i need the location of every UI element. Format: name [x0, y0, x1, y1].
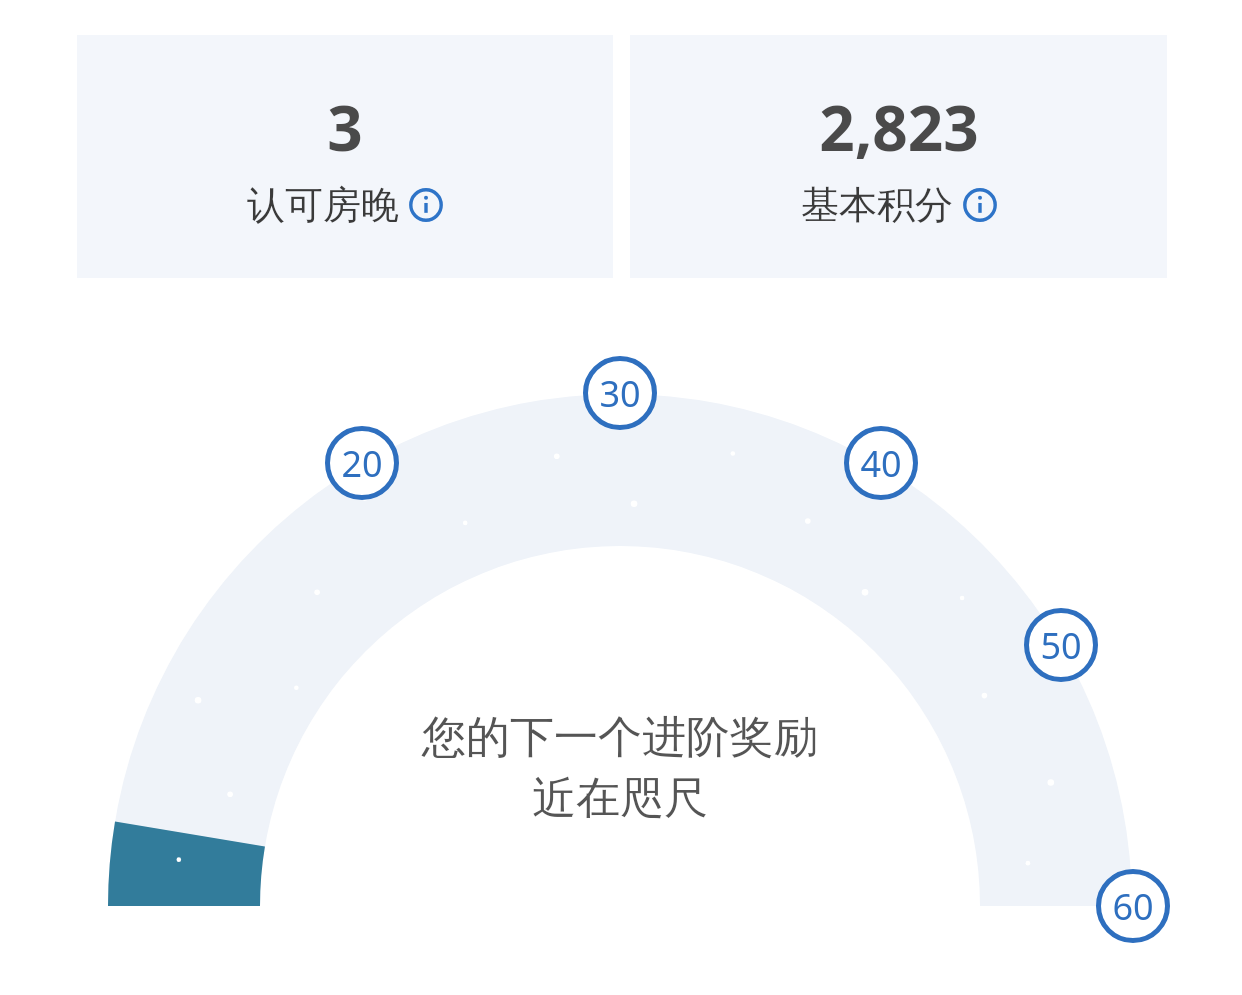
- staticText: 50: [1040, 621, 1082, 670]
- staticText: 40: [860, 439, 902, 488]
- button[interactable]: 30: [583, 356, 657, 430]
- staticText: 基本积分: [801, 181, 953, 229]
- button[interactable]: 50: [1024, 608, 1098, 682]
- staticText: 20: [341, 439, 383, 488]
- staticText: 3: [327, 85, 363, 169]
- staticText: 认可房晚: [247, 181, 399, 229]
- button[interactable]: 20: [325, 426, 399, 500]
- staticText: 您的下一个进阶奖励: [422, 710, 818, 765]
- button[interactable]: 2,823: [630, 35, 1167, 278]
- staticText: 近在咫尺: [532, 771, 708, 826]
- staticText: 60: [1112, 882, 1154, 931]
- button[interactable]: More information: [963, 188, 997, 222]
- staticText: 30: [599, 369, 641, 418]
- button[interactable]: 3: [77, 35, 613, 278]
- button[interactable]: More information: [409, 188, 443, 222]
- button[interactable]: 60: [1096, 869, 1170, 943]
- button[interactable]: 40: [844, 426, 918, 500]
- staticText: 2,823: [819, 85, 979, 169]
